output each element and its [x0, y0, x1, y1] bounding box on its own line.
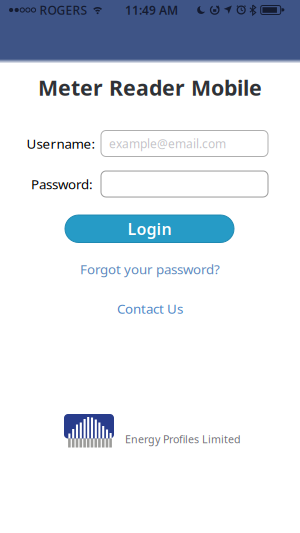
staticText: Password:	[31, 175, 93, 193]
staticText: Forgot your password?	[80, 260, 220, 278]
staticText: ROGERS	[40, 2, 88, 18]
button[interactable]: Forgot your password?	[80, 260, 220, 278]
staticText: example@email.com	[109, 135, 226, 151]
staticText: Login	[127, 218, 171, 239]
button[interactable]: Username	[101, 130, 268, 156]
button[interactable]: Contact Us	[117, 300, 183, 317]
staticText: Energy Profiles Limited	[125, 432, 241, 446]
staticText: Username:	[26, 135, 95, 152]
button[interactable]: Password	[101, 171, 268, 197]
staticText: 11:49 AM	[125, 2, 178, 18]
staticText: Meter Reader Mobile	[38, 73, 262, 102]
staticText: Contact Us	[117, 300, 183, 317]
button[interactable]: Login	[65, 215, 234, 242]
